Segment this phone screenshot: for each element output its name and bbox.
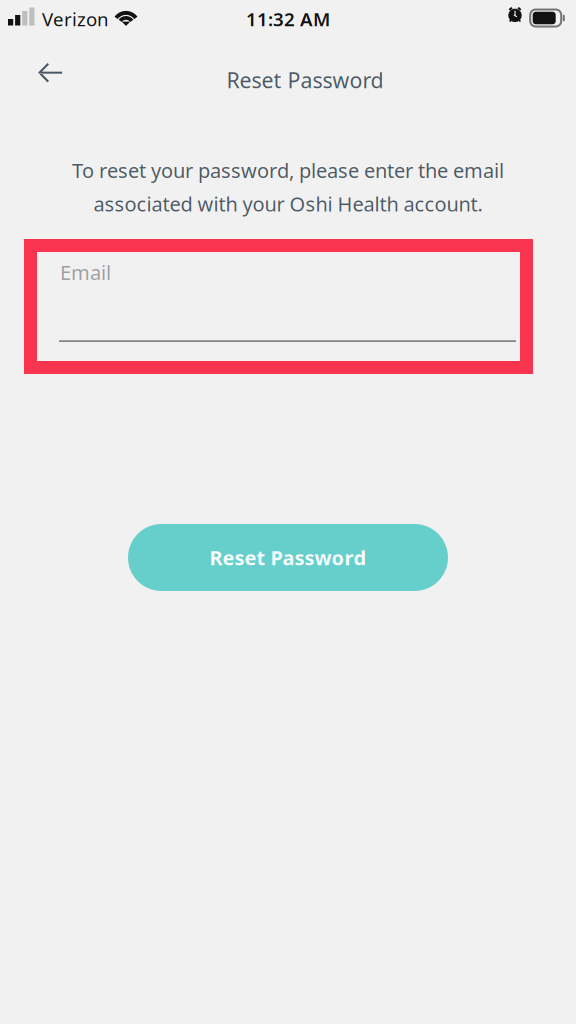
button[interactable]: Back [19, 49, 81, 97]
staticText: 11:32 AM [246, 7, 330, 31]
staticText: Reset Password [209, 544, 366, 571]
staticText: Email [60, 259, 111, 286]
button[interactable]: Email [24, 239, 533, 374]
button[interactable]: Reset Password [128, 524, 448, 591]
staticText: Reset Password [226, 66, 383, 94]
staticText: associated with your Oshi Health account… [93, 191, 482, 217]
staticText: To reset your password, please enter the… [72, 157, 504, 184]
staticText: Verizon [42, 7, 109, 31]
